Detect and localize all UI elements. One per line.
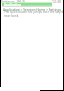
staticText: 12:30 [52,0,61,4]
staticText: Application > Services Home > Settings [3,8,61,12]
staticText: Application [4,3,22,7]
staticText: The quick brown fox jumps over the lazy … [4,10,64,18]
staticText: Settings - Wi-Fi [1,0,26,4]
